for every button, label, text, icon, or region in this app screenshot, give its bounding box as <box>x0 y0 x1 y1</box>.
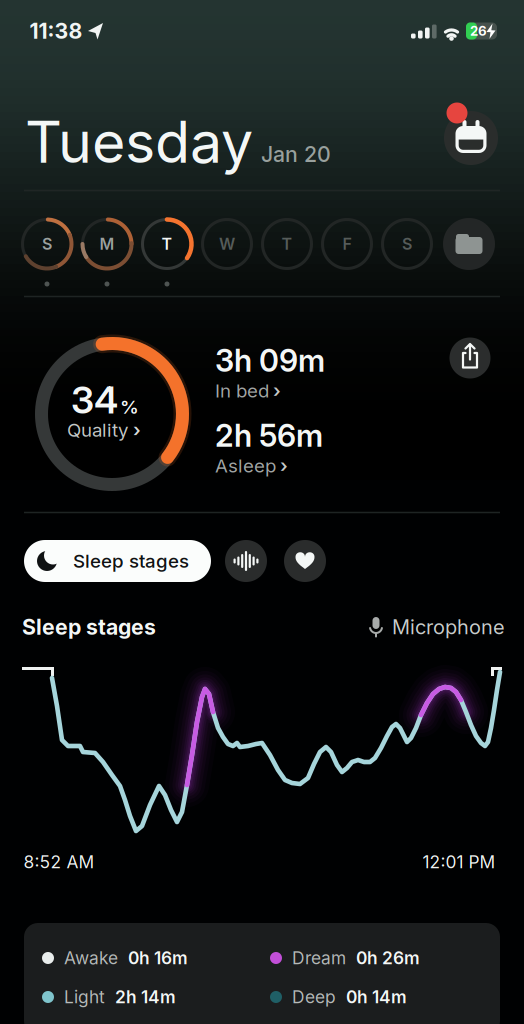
staticText: 3h 09m <box>215 342 325 379</box>
staticText: W <box>219 235 235 253</box>
button[interactable] <box>0 0 524 1024</box>
button[interactable]: S <box>0 0 524 1024</box>
staticText: T <box>281 235 292 253</box>
button[interactable]: Microphone <box>0 0 524 1024</box>
button[interactable]: Deep <box>0 0 524 1024</box>
staticText: 2h 56m <box>215 417 323 454</box>
staticText: Sleep stages <box>22 614 156 640</box>
staticText: % <box>120 396 139 418</box>
staticText: In bed <box>215 380 269 402</box>
button[interactable]: Sleep stages <box>0 0 524 1024</box>
staticText: Quality <box>67 419 128 441</box>
staticText: 8:52 AM <box>23 852 94 872</box>
staticText: 0h 16m <box>128 948 188 968</box>
staticText: 12:01 PM <box>422 852 495 872</box>
staticText: 11:38 <box>29 18 82 44</box>
button[interactable]: 3h 09m <box>0 0 524 1024</box>
staticText: Microphone <box>392 615 505 639</box>
button[interactable] <box>0 0 524 1024</box>
button[interactable] <box>0 0 524 1024</box>
button[interactable] <box>0 0 524 1024</box>
staticText: M <box>99 235 114 253</box>
staticText: 26 <box>470 23 487 39</box>
button[interactable]: Dream <box>0 0 524 1024</box>
staticText: T <box>161 235 172 253</box>
staticText: 34 <box>71 378 118 422</box>
button[interactable]: 34 <box>0 0 524 1024</box>
staticText: S <box>42 235 52 253</box>
button[interactable]: W <box>0 0 524 1024</box>
staticText: › <box>280 455 288 477</box>
staticText: 2h 14m <box>115 987 176 1007</box>
button[interactable]: 2h 56m <box>0 0 524 1024</box>
staticText: 0h 14m <box>346 987 407 1007</box>
button[interactable]: Awake <box>0 0 524 1024</box>
button[interactable]: M <box>0 0 524 1024</box>
staticText: Asleep <box>215 455 276 477</box>
staticText: F <box>342 235 351 253</box>
button[interactable] <box>0 0 524 1024</box>
staticText: Light <box>64 987 105 1007</box>
staticText: S <box>402 235 412 253</box>
staticText: 0h 26m <box>356 948 420 968</box>
staticText: Tuesday <box>25 108 253 176</box>
staticText: › <box>133 419 141 441</box>
staticText: Jan 20 <box>261 142 331 167</box>
staticText: Sleep stages <box>73 550 189 572</box>
button[interactable]: F <box>0 0 524 1024</box>
button[interactable]: Light <box>0 0 524 1024</box>
staticText: › <box>273 380 281 402</box>
staticText: Awake <box>64 948 118 968</box>
button[interactable]: S <box>0 0 524 1024</box>
staticText: Dream <box>292 948 346 968</box>
button[interactable]: T <box>0 0 524 1024</box>
staticText: Deep <box>292 987 336 1007</box>
button[interactable]: T <box>0 0 524 1024</box>
